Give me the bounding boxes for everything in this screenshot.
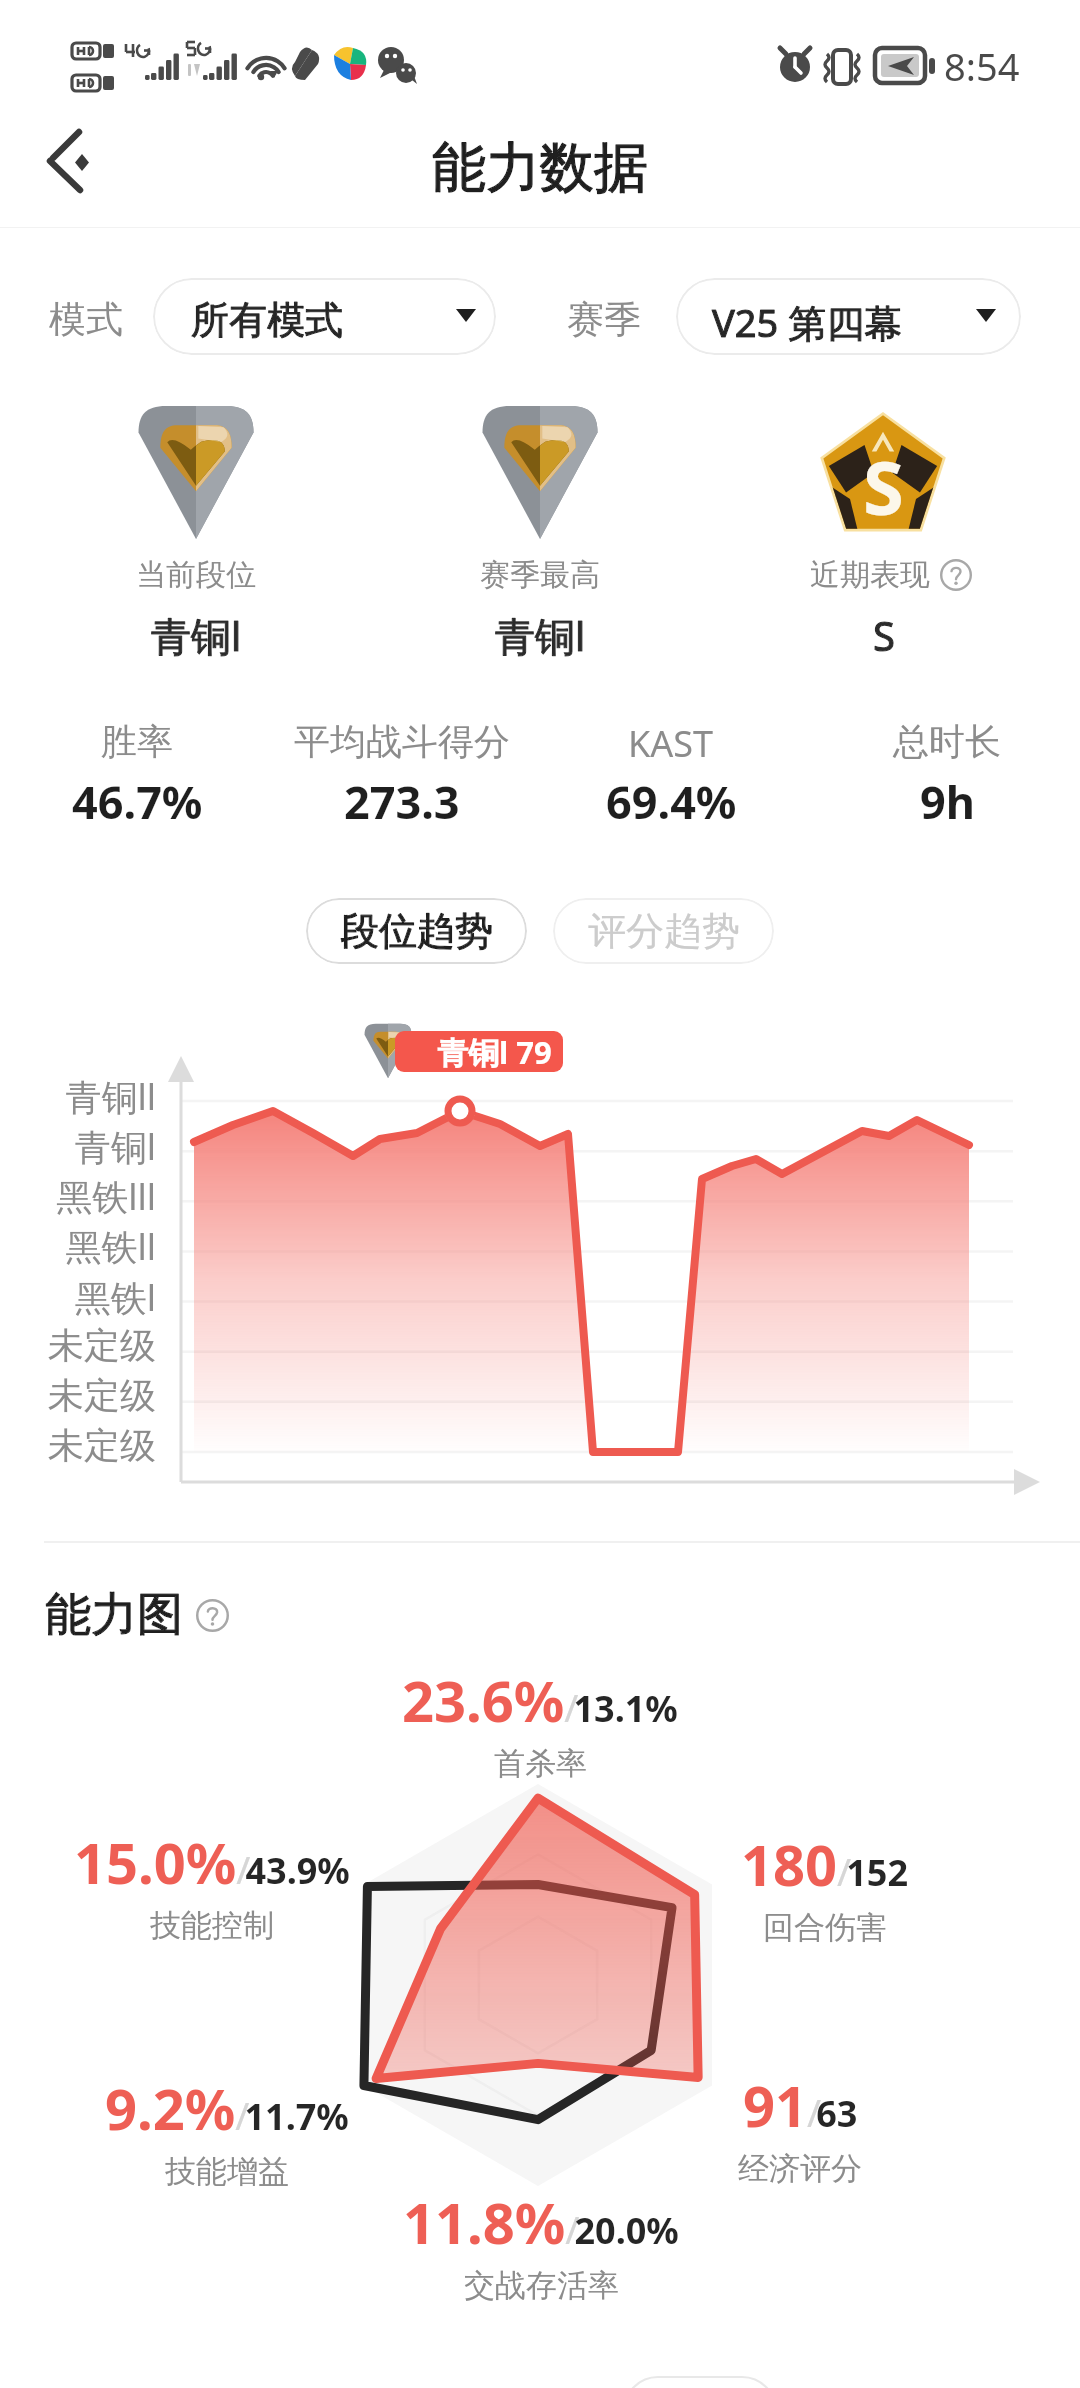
staticText: 赛季: [567, 296, 641, 343]
staticText: 9h: [920, 771, 975, 832]
staticText: 交战存活率: [464, 2266, 619, 2305]
staticText: 未定级: [0, 1323, 156, 1368]
staticText: 180/152: [741, 1826, 909, 1902]
button[interactable]: 青铜l 79: [395, 1031, 563, 1072]
staticText: 青铜ll: [0, 1072, 156, 1121]
staticText: 9.2%/11.7%: [105, 2070, 349, 2146]
staticText: 能力图: [45, 1586, 183, 1644]
staticText: 273.3: [344, 771, 460, 832]
button[interactable]: Back: [24, 122, 104, 202]
staticText: 23.6%/13.1%: [402, 1662, 678, 1738]
staticText: 69.4%: [606, 771, 737, 832]
staticText: 技能增益: [165, 2152, 289, 2191]
staticText: 能力数据: [432, 134, 648, 202]
staticText: 回合伤害: [763, 1908, 887, 1947]
staticText: 段位趋势: [341, 907, 493, 955]
button[interactable]: Season peak rank: [470, 402, 610, 542]
staticText: V25 第四幕: [712, 296, 903, 348]
staticText: 胜率: [101, 719, 173, 764]
staticText: 技能控制: [150, 1906, 274, 1945]
button[interactable]: Current rank: [126, 402, 266, 542]
staticText: 能力图: [45, 1586, 183, 1644]
staticText: 青铜l: [151, 608, 242, 663]
staticText: 评分趋势: [588, 907, 740, 955]
staticText: 所有模式: [191, 296, 343, 344]
staticText: 所有模式: [191, 296, 343, 344]
staticText: 首杀率: [494, 1744, 587, 1783]
button[interactable]: 段位趋势: [306, 898, 527, 964]
button[interactable]: Recent performance: [813, 408, 953, 548]
staticText: 11.8%/20.0%: [403, 2184, 679, 2260]
staticText: V25 第四幕: [712, 296, 903, 348]
button[interactable]: 所有模式: [153, 278, 496, 355]
staticText: 总时长: [893, 719, 1001, 764]
staticText: 赛季最高: [480, 556, 600, 594]
staticText: 黑铁l: [0, 1273, 156, 1322]
staticText: 平均战斗得分: [294, 719, 510, 764]
staticText: 91/63: [743, 2067, 858, 2143]
staticText: 当前段位: [136, 556, 256, 594]
button[interactable]: 评分趋势: [553, 898, 774, 964]
button[interactable]: Help: [196, 1599, 229, 1632]
button[interactable]: [623, 2376, 777, 2388]
button[interactable]: V25 第四幕: [676, 278, 1021, 355]
staticText: 未定级: [0, 1373, 156, 1418]
button[interactable]: Help: [940, 559, 972, 591]
staticText: 黑铁lll: [0, 1172, 156, 1221]
staticText: 近期表现: [810, 556, 930, 594]
staticText: 青铜l: [151, 608, 242, 663]
staticText: 黑铁ll: [0, 1222, 156, 1271]
staticText: 青铜l: [495, 608, 586, 663]
staticText: 青铜l 79: [437, 1031, 552, 1072]
staticText: 经济评分: [738, 2149, 862, 2188]
staticText: 青铜l: [0, 1122, 156, 1171]
staticText: S: [873, 608, 895, 662]
staticText: 8:54: [944, 40, 1020, 92]
staticText: KAST: [628, 719, 714, 768]
staticText: 模式: [49, 296, 123, 343]
staticText: S: [863, 436, 904, 537]
staticText: 15.0%/43.9%: [74, 1824, 350, 1900]
staticText: 46.7%: [72, 771, 203, 832]
staticText: 未定级: [0, 1423, 156, 1468]
staticText: 青铜l: [495, 608, 586, 663]
staticText: 能力数据: [432, 134, 648, 202]
staticText: S: [873, 608, 895, 662]
staticText: 段位趋势: [341, 907, 493, 955]
